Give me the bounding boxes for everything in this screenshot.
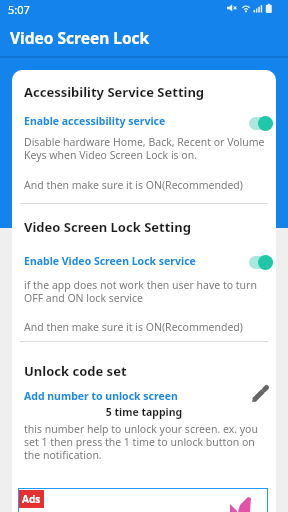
staticText: And then make sure it is ON(Recommended) [24,320,243,334]
button[interactable]: Enable Video Screen Lock service [24,254,196,268]
staticText: this number help to unlock your screen. … [24,422,258,462]
button[interactable]: Ads [18,488,268,512]
button[interactable] [245,254,273,270]
staticText: Video Screen Lock Setting [24,218,191,236]
staticText: Disable hardware Home, Back, Recent or V… [24,135,265,162]
button[interactable] [250,384,270,404]
staticText: 5:07 [8,2,30,17]
staticText: Unlock code set [24,362,127,380]
button[interactable]: Add number to unlock screen [24,389,178,403]
staticText: And then make sure it is ON(Recommended) [24,178,243,192]
button[interactable] [245,115,273,131]
staticText: Ads [22,492,41,506]
staticText: Video Screen Lock [10,27,150,48]
button[interactable]: Enable accessibility service [24,114,166,128]
staticText: if the app does not work then user have … [24,278,257,305]
staticText: Accessibility Service Setting [24,83,205,101]
staticText: 5 time tapping [12,405,276,419]
